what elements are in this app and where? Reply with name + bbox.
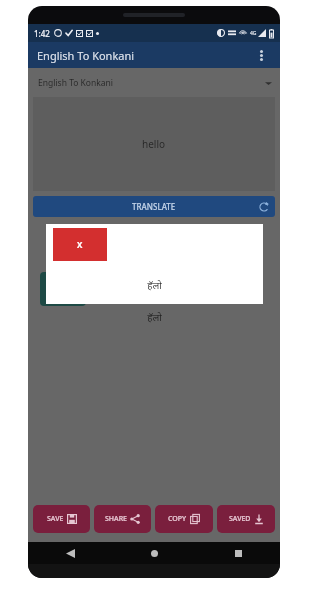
button[interactable]: More options [251,45,271,65]
button[interactable]: SHARE [94,505,151,533]
button[interactable]: English To Konkani [33,72,275,94]
staticText: 4G [250,30,257,37]
button[interactable]: LISTEN [40,272,86,306]
staticText: TRANSLATE [132,201,176,212]
staticText: COPY [168,514,187,524]
staticText: English To Konkani [37,48,135,63]
staticText: SAVED [229,514,251,524]
staticText: hello [142,137,166,151]
button[interactable]: Home [112,542,196,564]
button[interactable]: TRANSLATE [33,196,275,217]
button[interactable]: Refresh [258,201,269,212]
staticText: SHARE [105,514,127,524]
button[interactable]: Recent apps [196,542,280,564]
staticText: X [77,239,83,250]
staticText: हॅलो [147,310,162,324]
staticText: SAVE [47,514,64,524]
button[interactable]: COPY [155,505,213,533]
staticText: English To Konkani [38,77,114,89]
button[interactable]: SAVED [217,505,275,533]
button[interactable]: Back [28,542,112,564]
button[interactable]: Close [53,228,107,261]
staticText: हॅलो [147,278,162,292]
staticText: 1:42 [34,28,50,39]
button[interactable]: SAVE [33,505,90,533]
